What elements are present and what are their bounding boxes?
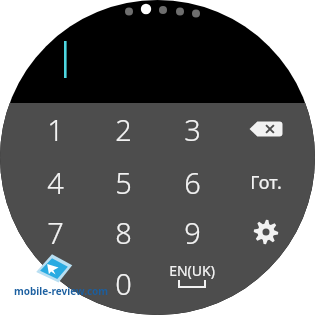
staticText: 3 xyxy=(184,110,201,149)
staticText: 5 xyxy=(115,163,132,202)
staticText: 9 xyxy=(184,213,201,252)
staticText: 6 xyxy=(184,163,201,202)
button[interactable]: 4 xyxy=(22,157,88,207)
staticText: mobile-review.com xyxy=(14,284,109,298)
staticText: 7 xyxy=(47,213,64,252)
button[interactable]: 7 xyxy=(22,207,88,257)
button[interactable]: 5 xyxy=(90,157,156,207)
staticText: 4 xyxy=(47,163,64,202)
staticText: 8 xyxy=(115,213,132,252)
button[interactable]: 3 xyxy=(159,104,225,154)
staticText: Гот. xyxy=(250,170,282,195)
button[interactable]: 1 xyxy=(22,104,88,154)
button[interactable]: 9 xyxy=(159,207,225,257)
staticText: EN(UK) xyxy=(169,261,215,280)
button[interactable]: 8 xyxy=(90,207,156,257)
staticText: 2 xyxy=(115,110,132,149)
staticText: 0 xyxy=(115,264,132,303)
button[interactable]: Settings xyxy=(242,208,290,256)
button[interactable]: Backspace xyxy=(236,107,296,151)
button[interactable]: 2 xyxy=(90,104,156,154)
staticText: 1 xyxy=(47,110,64,149)
button[interactable]: Гот. xyxy=(233,159,299,205)
button[interactable]: 0 xyxy=(90,258,156,308)
button[interactable]: EN(UK) xyxy=(156,258,228,298)
button[interactable]: 6 xyxy=(159,157,225,207)
